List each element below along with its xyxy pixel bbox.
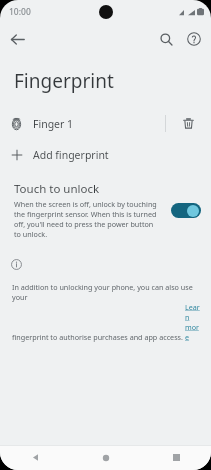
staticText: fingerprint to authorise purchases and a… — [12, 332, 185, 342]
button[interactable]: Recent apps — [141, 445, 211, 470]
button[interactable]: Add fingerprint — [0, 139, 211, 170]
button[interactable]: Back — [0, 445, 71, 470]
staticText: 10:00 — [9, 6, 31, 18]
staticText: Finger 1 — [33, 117, 74, 131]
button[interactable]: Home — [71, 445, 141, 470]
button[interactable]: Touch to unlock — [0, 178, 211, 245]
button[interactable]: Help — [180, 25, 208, 53]
staticText: Add fingerprint — [33, 148, 109, 162]
staticText: Touch to unlock — [14, 181, 100, 197]
button[interactable]: Back — [3, 25, 31, 53]
staticText: In addition to unlocking your phone, you… — [12, 282, 201, 302]
button[interactable]: Touch to unlock toggle — [169, 198, 203, 222]
button[interactable]: Delete Finger 1 — [166, 108, 211, 139]
button[interactable]: Learn more — [185, 302, 201, 342]
button[interactable]: Search — [152, 25, 180, 53]
button[interactable]: Finger 1 — [0, 108, 211, 139]
staticText: Fingerprint — [14, 68, 114, 94]
staticText: When the screen is off, unlock by touchi… — [14, 199, 161, 239]
